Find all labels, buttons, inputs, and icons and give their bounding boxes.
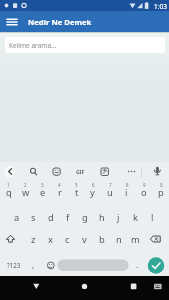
button[interactable] xyxy=(124,163,138,180)
staticText: 9 xyxy=(143,182,146,188)
button[interactable] xyxy=(73,278,97,298)
button[interactable]: a xyxy=(8,206,25,228)
staticText: 1 xyxy=(7,182,10,188)
staticText: . xyxy=(136,259,139,270)
button[interactable] xyxy=(149,278,167,298)
button[interactable]: o xyxy=(135,181,152,203)
staticText: 7 xyxy=(109,182,112,188)
button[interactable]: f xyxy=(59,206,76,228)
button[interactable]: 3 xyxy=(38,182,46,188)
button[interactable]: w xyxy=(17,181,34,203)
button[interactable]: m xyxy=(127,228,144,250)
staticText: m xyxy=(131,233,140,246)
button[interactable]: g xyxy=(76,206,93,228)
staticText: v xyxy=(82,233,87,246)
staticText: k xyxy=(133,211,138,224)
button[interactable] xyxy=(3,163,17,180)
button[interactable]: 5 xyxy=(72,182,80,188)
button[interactable] xyxy=(42,253,58,270)
staticText: c xyxy=(65,233,70,246)
staticText: e xyxy=(40,186,46,199)
staticText: 4 xyxy=(58,182,61,188)
staticText: y xyxy=(90,186,95,199)
button[interactable]: 1 xyxy=(4,182,12,188)
button[interactable] xyxy=(98,163,112,180)
button[interactable]: 8 xyxy=(123,182,131,188)
staticText: b xyxy=(99,233,105,246)
staticText: d xyxy=(48,211,54,224)
button[interactable]: u xyxy=(101,181,118,203)
staticText: w xyxy=(22,186,30,199)
button[interactable]: c xyxy=(59,228,76,250)
button[interactable]: Kelime arama... xyxy=(5,37,165,53)
button[interactable]: z xyxy=(25,228,42,250)
button[interactable]: n xyxy=(110,228,127,250)
button[interactable]: ?123 xyxy=(5,254,22,276)
button[interactable] xyxy=(2,229,19,249)
button[interactable] xyxy=(3,13,21,29)
staticText: q xyxy=(6,186,12,199)
button[interactable] xyxy=(57,253,129,270)
button[interactable]: , xyxy=(25,253,42,275)
staticText: r xyxy=(58,186,62,199)
staticText: 6 xyxy=(92,182,95,188)
button[interactable]: s xyxy=(25,206,42,228)
staticText: z xyxy=(31,233,36,246)
staticText: GIF xyxy=(76,169,85,176)
button[interactable] xyxy=(147,229,165,249)
button[interactable]: j xyxy=(110,206,127,228)
button[interactable]: p xyxy=(152,181,169,203)
staticText: 2 xyxy=(24,182,27,188)
button[interactable]: i xyxy=(118,181,135,203)
button[interactable]: 2 xyxy=(21,182,29,188)
button[interactable]: q xyxy=(0,181,17,203)
staticText: s xyxy=(31,211,36,224)
button[interactable]: 6 xyxy=(89,182,97,188)
button[interactable] xyxy=(26,163,40,180)
button[interactable]: k xyxy=(127,206,144,228)
staticText: 3 xyxy=(41,182,44,188)
button[interactable] xyxy=(122,278,146,298)
button[interactable] xyxy=(147,255,165,273)
button[interactable]: x xyxy=(42,228,59,250)
button[interactable]: e xyxy=(34,181,51,203)
button[interactable]: t xyxy=(68,181,85,203)
staticText: t xyxy=(75,186,79,199)
button[interactable]: h xyxy=(93,206,110,228)
button[interactable]: GIF xyxy=(72,161,89,183)
staticText: 0 xyxy=(160,182,163,188)
button[interactable]: d xyxy=(42,206,59,228)
staticText: Kelime arama... xyxy=(9,41,57,50)
staticText: ?123 xyxy=(7,261,21,269)
staticText: Nedir Ne Demek xyxy=(28,17,92,27)
staticText: x xyxy=(48,233,53,246)
staticText: n xyxy=(116,233,122,246)
button[interactable] xyxy=(50,163,64,180)
staticText: p xyxy=(158,186,164,199)
staticText: o xyxy=(141,186,147,199)
staticText: h xyxy=(99,211,105,224)
staticText: 5 xyxy=(75,182,78,188)
button[interactable]: l xyxy=(144,206,161,228)
staticText: j xyxy=(117,211,120,224)
button[interactable]: r xyxy=(51,181,68,203)
button[interactable]: b xyxy=(93,228,110,250)
staticText: l xyxy=(151,211,154,224)
button[interactable] xyxy=(148,163,162,180)
staticText: f xyxy=(66,211,70,224)
button[interactable] xyxy=(24,278,48,298)
button[interactable]: 0 xyxy=(157,182,165,188)
button[interactable]: . xyxy=(129,253,146,275)
button[interactable]: 1:03 xyxy=(150,1,169,11)
button[interactable]: 4 xyxy=(55,182,63,188)
staticText: u xyxy=(107,186,113,199)
staticText: 8 xyxy=(126,182,129,188)
staticText: , xyxy=(32,259,35,270)
button[interactable]: v xyxy=(76,228,93,250)
button[interactable]: y xyxy=(84,181,101,203)
button[interactable]: 7 xyxy=(106,182,114,188)
button[interactable] xyxy=(74,163,88,180)
staticText: a xyxy=(14,211,20,224)
staticText: g xyxy=(82,211,88,224)
button[interactable]: 9 xyxy=(140,182,148,188)
